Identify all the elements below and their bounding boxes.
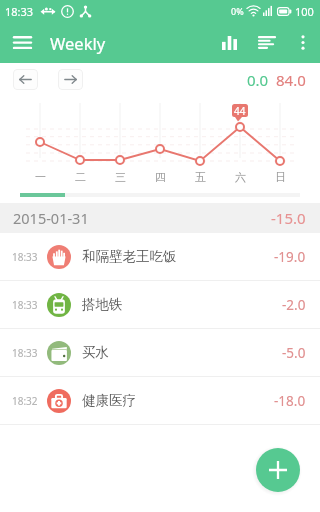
button[interactable]: 18:33: [0, 233, 320, 280]
button[interactable]: Add record: [256, 448, 300, 492]
staticText: 三: [115, 170, 126, 184]
staticText: 18:33: [5, 4, 34, 19]
button[interactable]: Statistics chart: [210, 22, 248, 63]
staticText: 一: [35, 170, 46, 184]
staticText: 0.0: [247, 70, 269, 90]
staticText: 买水: [82, 344, 109, 361]
staticText: 日: [275, 170, 286, 184]
staticText: 四: [155, 170, 166, 184]
staticText: 2015-01-31: [13, 208, 89, 228]
button[interactable]: 18:33: [0, 329, 320, 376]
staticText: 五: [195, 170, 206, 184]
staticText: -5.0: [282, 344, 306, 362]
staticText: 搭地铁: [82, 296, 123, 313]
staticText: -18.0: [274, 392, 306, 410]
staticText: 84.0: [276, 70, 306, 90]
staticText: 18:33: [12, 250, 38, 264]
staticText: 18:33: [12, 346, 38, 360]
staticText: 18:32: [12, 394, 38, 408]
button[interactable]: More options: [286, 22, 320, 63]
button[interactable]: Previous week: [13, 69, 38, 90]
staticText: 44: [234, 104, 246, 117]
button[interactable]: Open navigation menu: [0, 22, 45, 63]
staticText: 18:33: [12, 298, 38, 312]
staticText: 100: [295, 4, 314, 19]
staticText: -19.0: [274, 248, 306, 266]
staticText: Weekly: [50, 32, 106, 54]
staticText: 二: [75, 170, 86, 184]
button[interactable]: List view: [248, 22, 286, 63]
button[interactable]: Next week: [58, 69, 83, 90]
button[interactable]: 18:33: [0, 281, 320, 328]
staticText: -15.0: [271, 208, 306, 228]
staticText: 健康医疗: [82, 392, 136, 409]
button[interactable]: 18:32: [0, 377, 320, 424]
staticText: 和隔壁老王吃饭: [82, 248, 177, 265]
staticText: -2.0: [282, 296, 306, 314]
staticText: 六: [235, 170, 246, 184]
staticText: 0%: [231, 5, 244, 17]
